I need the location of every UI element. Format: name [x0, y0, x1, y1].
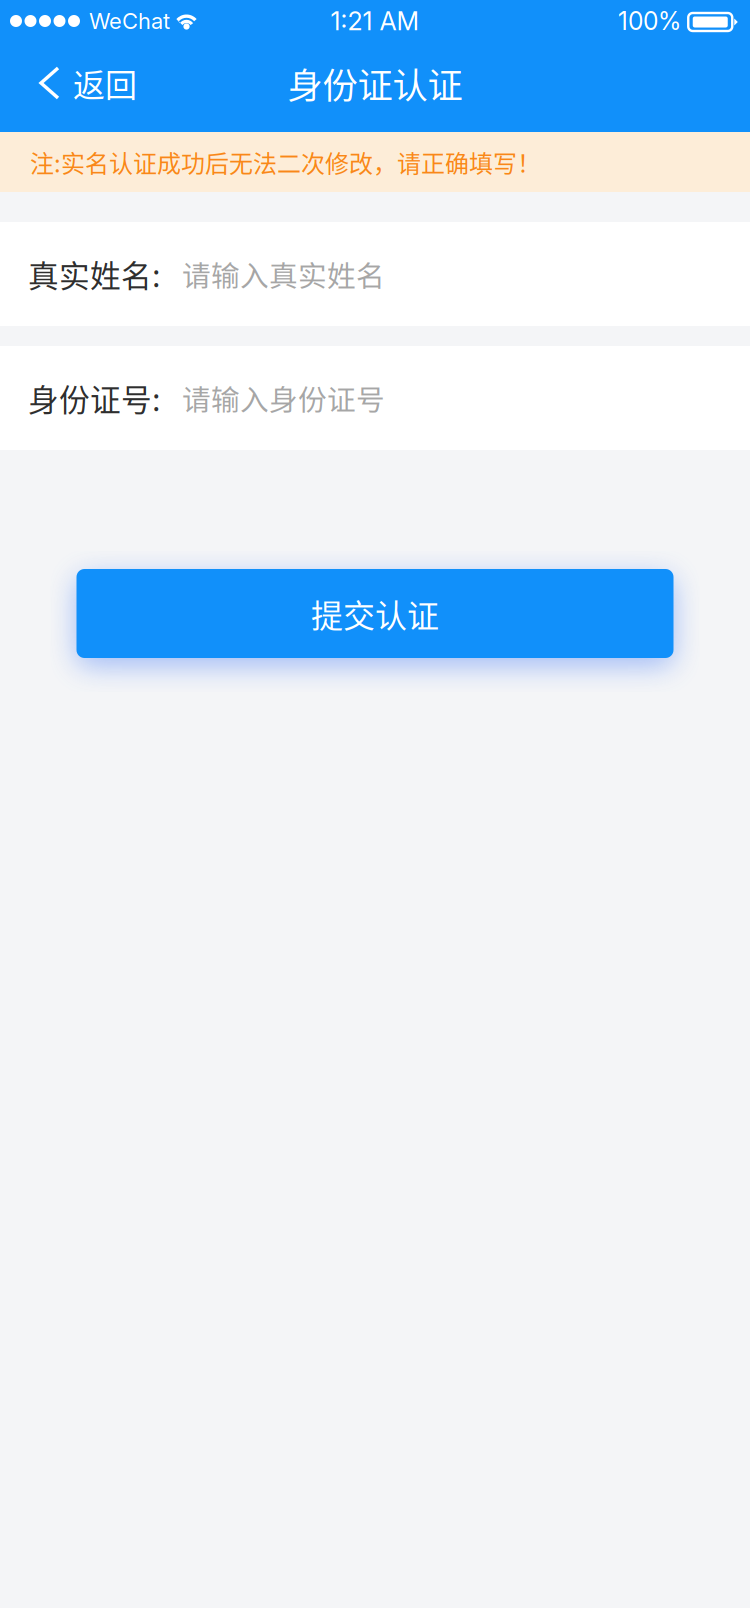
staticText: 真实姓名: — [28, 252, 161, 296]
staticText: 1:21 AM — [330, 6, 419, 36]
staticText: 请输入身份证号 — [182, 377, 385, 419]
button[interactable]: 返回 — [0, 48, 161, 132]
staticText: 提交认证 — [311, 590, 439, 637]
staticText: 身份证认证 — [287, 57, 462, 109]
staticText: 身份证号: — [28, 376, 161, 420]
staticText: 100% — [618, 6, 681, 36]
staticText: 注:实名认证成功后无法二次修改，请正确填写！ — [30, 145, 541, 179]
button[interactable]: 提交认证 — [76, 569, 673, 658]
staticText: 请输入真实姓名 — [182, 253, 385, 295]
staticText: 返回 — [73, 60, 137, 106]
staticText: WeChat — [89, 8, 170, 34]
